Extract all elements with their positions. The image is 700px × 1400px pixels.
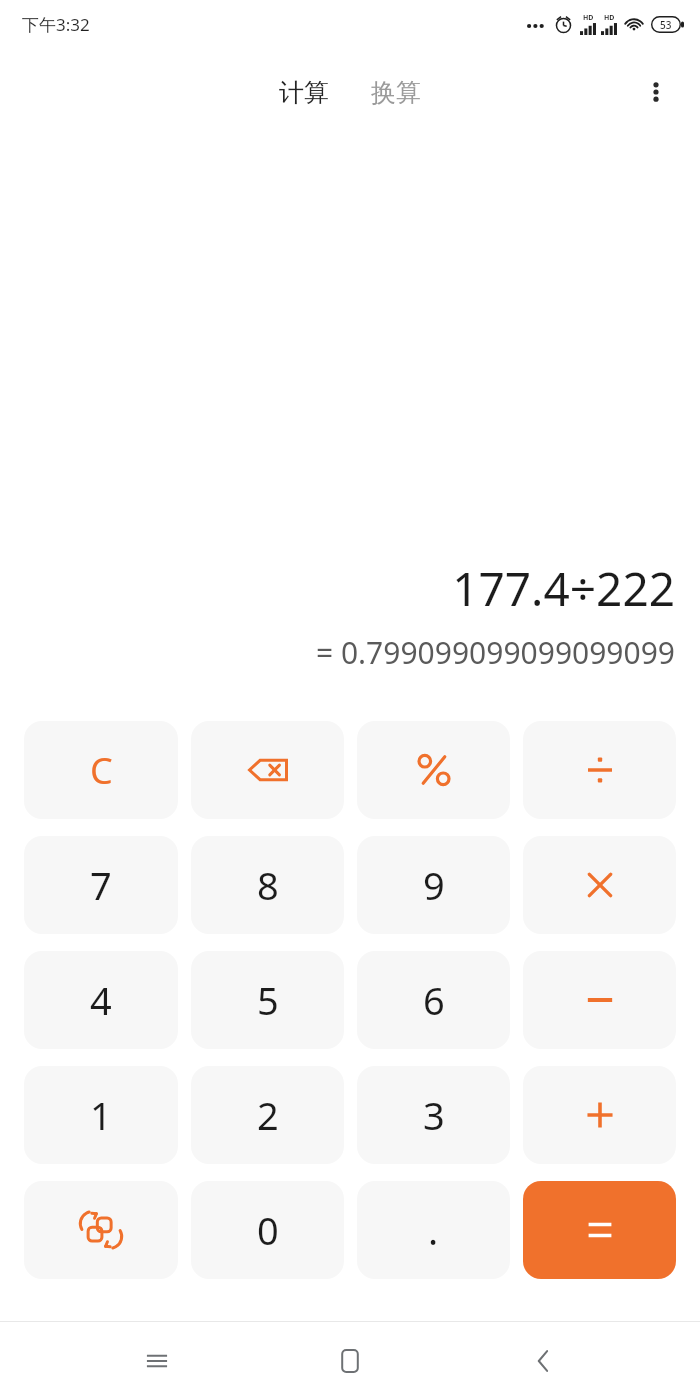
button[interactable]: 7	[24, 836, 178, 934]
staticText: C	[90, 746, 113, 795]
staticText: .	[428, 1204, 439, 1256]
staticText: 3	[423, 1089, 445, 1141]
staticText: 2	[257, 1089, 279, 1141]
button[interactable]: .	[357, 1181, 510, 1279]
staticText: 177.4÷222	[452, 557, 675, 620]
button[interactable]: 4	[24, 951, 178, 1049]
button[interactable]: C	[24, 721, 178, 819]
button[interactable]: Equals	[523, 1181, 676, 1279]
staticText: 53	[660, 18, 672, 32]
button[interactable]: Home	[313, 1324, 387, 1398]
staticText: HD	[583, 13, 594, 23]
button[interactable]: 6	[357, 951, 510, 1049]
staticText: 4	[90, 974, 112, 1026]
staticText: 下午3:32	[22, 13, 90, 36]
button[interactable]: 3	[357, 1066, 510, 1164]
button[interactable]: 5	[191, 951, 344, 1049]
button[interactable]: Back	[507, 1324, 581, 1398]
button[interactable]	[357, 721, 510, 819]
staticText: 0	[257, 1204, 279, 1256]
staticText: 换算	[371, 77, 421, 108]
staticText: 5	[257, 974, 279, 1026]
staticText: 6	[423, 974, 445, 1026]
staticText: HD	[604, 13, 615, 23]
button[interactable]: 计算	[269, 71, 339, 114]
button[interactable]	[523, 1066, 676, 1164]
staticText: 7	[90, 859, 112, 911]
button[interactable]: 8	[191, 836, 344, 934]
button[interactable]: 换算	[361, 71, 431, 114]
staticText: 8	[257, 859, 279, 911]
button[interactable]: More options	[630, 66, 682, 118]
button[interactable]: 1	[24, 1066, 178, 1164]
staticText: 计算	[279, 77, 329, 108]
button[interactable]: Unit convert	[24, 1181, 178, 1279]
button[interactable]	[523, 951, 676, 1049]
button[interactable]: Recents	[120, 1324, 194, 1398]
button[interactable]	[523, 721, 676, 819]
button[interactable]: 0	[191, 1181, 344, 1279]
staticText: 9	[423, 859, 445, 911]
button[interactable]: 2	[191, 1066, 344, 1164]
button[interactable]	[523, 836, 676, 934]
button[interactable]: Backspace	[191, 721, 344, 819]
staticText: = 0.799099099099099099	[315, 632, 675, 673]
staticText: 1	[90, 1089, 112, 1141]
button[interactable]: 9	[357, 836, 510, 934]
